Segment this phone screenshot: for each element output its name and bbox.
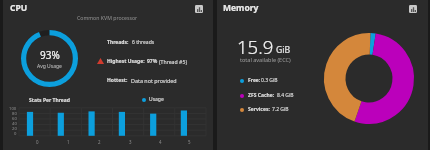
staticText: GiB bbox=[276, 44, 291, 56]
staticText: Data not provided bbox=[131, 77, 177, 84]
staticText: 4 bbox=[159, 139, 162, 145]
staticText: Free: bbox=[248, 77, 261, 84]
staticText: ZFS Cache: bbox=[248, 92, 275, 99]
staticText: 0 bbox=[14, 131, 17, 137]
button[interactable]: Highest Usage: bbox=[107, 58, 145, 65]
button[interactable]: CPU chart bbox=[195, 5, 203, 13]
staticText: 93% bbox=[40, 48, 60, 62]
staticText: Memory bbox=[223, 2, 259, 14]
staticText: 5 bbox=[188, 139, 191, 145]
staticText: Common KVM processor bbox=[77, 14, 138, 21]
staticText: 20 bbox=[12, 126, 17, 132]
staticText: 6 threads bbox=[132, 39, 155, 46]
staticText: 40 bbox=[12, 121, 17, 127]
staticText: 8.4 GiB bbox=[277, 92, 294, 99]
button[interactable]: Free: bbox=[240, 77, 257, 84]
staticText: Stats Per Thread bbox=[29, 97, 70, 104]
staticText: Avg Usage bbox=[37, 63, 62, 70]
staticText: 2 bbox=[98, 139, 101, 145]
staticText: CPU bbox=[10, 2, 28, 14]
staticText: Services: bbox=[248, 106, 270, 113]
staticText: total available (ECC) bbox=[240, 56, 291, 63]
staticText: Highest Usage: bbox=[107, 58, 145, 65]
staticText: 100 bbox=[9, 106, 17, 112]
staticText: 0 bbox=[36, 139, 39, 145]
button[interactable]: Memory chart bbox=[409, 5, 417, 13]
button[interactable]: Threads: bbox=[107, 39, 130, 46]
staticText: 3 bbox=[129, 139, 132, 145]
staticText: 0.3 GiB bbox=[261, 77, 278, 84]
staticText: Hottest: bbox=[107, 77, 128, 84]
staticText: 60 bbox=[12, 116, 17, 122]
staticText: 80 bbox=[12, 111, 17, 117]
staticText: 1 bbox=[67, 139, 70, 145]
staticText: Usage bbox=[149, 96, 164, 103]
staticText: 15.9 bbox=[237, 34, 274, 59]
button[interactable]: Usage bbox=[142, 96, 164, 103]
staticText: (Thread #5) bbox=[159, 58, 187, 65]
button[interactable]: Hottest: bbox=[107, 77, 153, 84]
button[interactable]: Services: bbox=[240, 106, 262, 113]
staticText: 97% bbox=[147, 58, 158, 65]
button[interactable]: ZFS Cache: bbox=[240, 92, 267, 99]
staticText: 7.2 GiB bbox=[272, 106, 289, 113]
staticText: Threads: bbox=[107, 39, 129, 46]
